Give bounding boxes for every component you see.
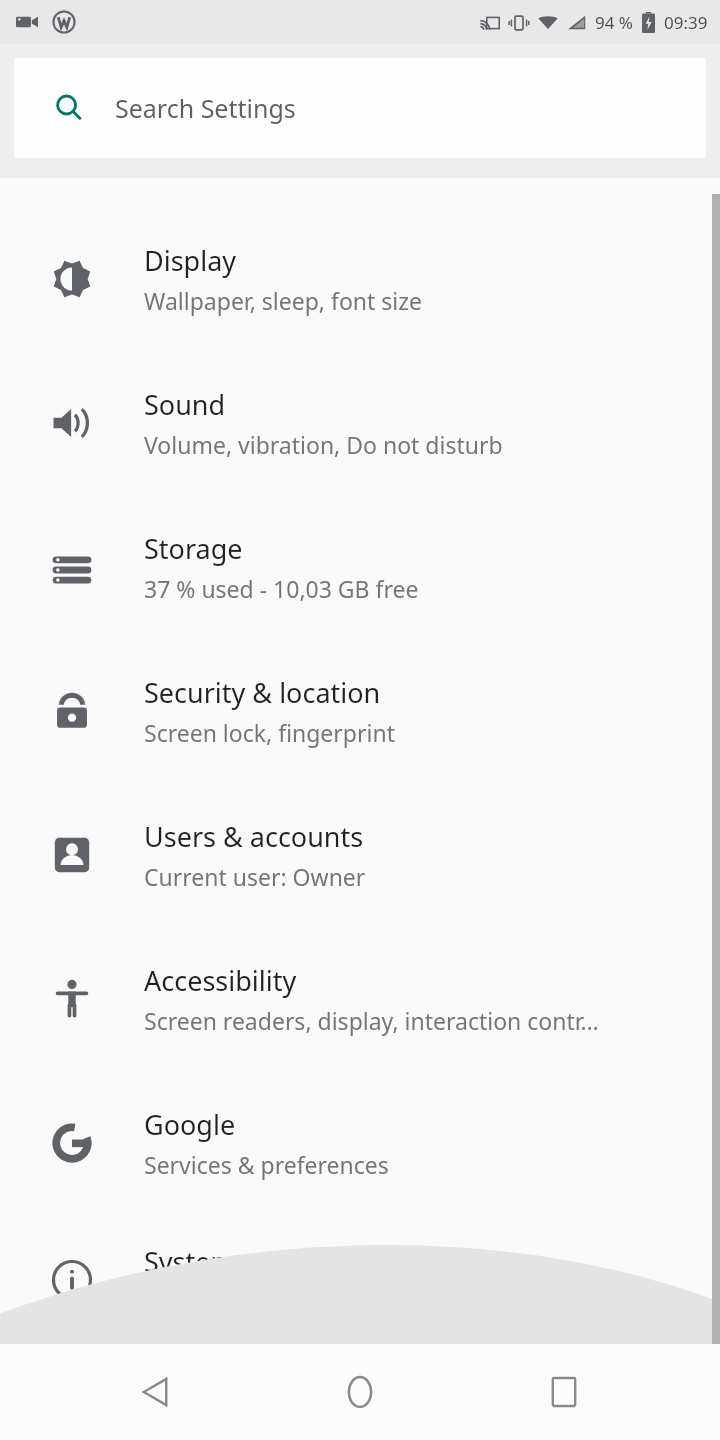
button[interactable]: Back bbox=[108, 1344, 204, 1440]
button[interactable]: Recent apps bbox=[516, 1344, 612, 1440]
button[interactable]: Display bbox=[0, 207, 720, 351]
staticText: System bbox=[144, 1243, 236, 1280]
button[interactable]: Sound bbox=[0, 351, 720, 495]
button[interactable]: Search Settings bbox=[14, 58, 706, 158]
button[interactable]: System bbox=[0, 1215, 720, 1344]
staticText: Screen readers, display, interaction con… bbox=[144, 1005, 599, 1036]
button[interactable]: Home bbox=[312, 1344, 408, 1440]
staticText: Services & preferences bbox=[144, 1149, 389, 1180]
staticText: Display bbox=[144, 242, 237, 279]
staticText: Accessibility bbox=[144, 962, 297, 999]
staticText: 37 % used - 10,03 GB free bbox=[144, 573, 419, 604]
staticText: Wallpaper, sleep, font size bbox=[144, 285, 423, 316]
button[interactable]: Google bbox=[0, 1071, 720, 1215]
button[interactable]: Accessibility bbox=[0, 927, 720, 1071]
staticText: Security & location bbox=[144, 674, 381, 711]
staticText: Volume, vibration, Do not disturb bbox=[144, 429, 503, 460]
staticText: 09:39 bbox=[664, 11, 708, 34]
staticText: Sound bbox=[144, 386, 226, 423]
staticText: Storage bbox=[144, 530, 243, 567]
button[interactable]: Storage bbox=[0, 495, 720, 639]
staticText: Current user: Owner bbox=[144, 861, 366, 892]
button[interactable]: Users & accounts bbox=[0, 783, 720, 927]
staticText: 94 % bbox=[595, 11, 633, 34]
staticText: Screen lock, fingerprint bbox=[144, 717, 395, 748]
staticText: Search Settings bbox=[115, 91, 296, 125]
button[interactable]: Security & location bbox=[0, 639, 720, 783]
staticText: Users & accounts bbox=[144, 818, 364, 855]
staticText: Google bbox=[144, 1106, 236, 1143]
